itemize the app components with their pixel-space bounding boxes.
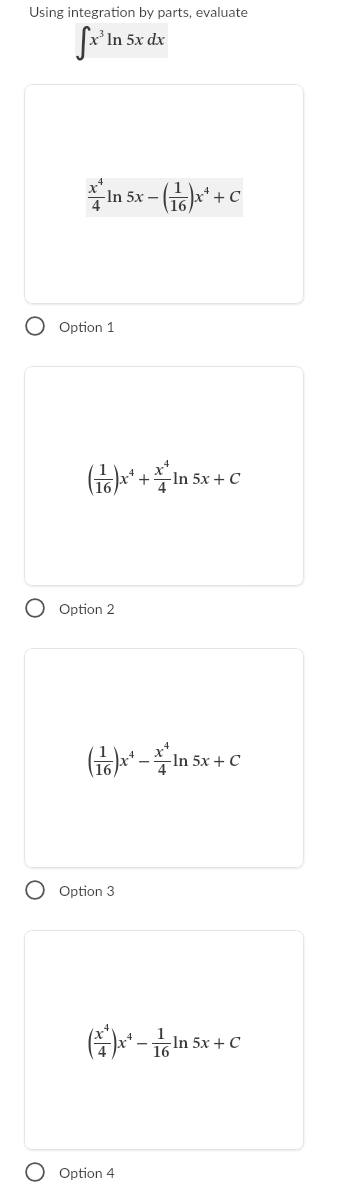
staticText: 1 [99, 744, 108, 761]
staticText: 1 [99, 462, 108, 479]
staticText: 4 [158, 762, 167, 779]
staticText: x [135, 189, 144, 206]
button[interactable]: Option 2 [25, 588, 135, 628]
staticText: 4 [164, 741, 170, 751]
staticText: x [201, 753, 210, 770]
staticText: 4 [158, 480, 167, 497]
staticText: 16 [95, 480, 112, 497]
staticText: − [136, 1035, 149, 1052]
staticText: x [155, 744, 164, 761]
staticText: − [138, 753, 151, 770]
staticText: x [118, 1035, 127, 1052]
button[interactable]: x [24, 84, 304, 304]
staticText: ln 5 [173, 753, 201, 770]
staticText: 4 [129, 750, 135, 760]
staticText: 4 [204, 186, 210, 196]
staticText: 3 [99, 29, 105, 39]
staticText: ∫ [74, 20, 93, 62]
button[interactable]: x [24, 930, 304, 1150]
staticText: x [120, 753, 129, 770]
staticText: 1 [157, 1026, 166, 1043]
staticText: 4 [92, 198, 101, 215]
staticText: C [229, 753, 241, 770]
staticText: Option 2 [59, 600, 115, 617]
button[interactable]: 1 [24, 366, 304, 586]
staticText: x [201, 471, 210, 488]
staticText: + [213, 1035, 226, 1052]
staticText: ln 5 [173, 471, 201, 488]
button[interactable]: Option 1 [25, 306, 135, 346]
staticText: 4 [98, 1044, 107, 1061]
staticText: x [155, 462, 164, 479]
staticText: Using integration by parts, evaluate [29, 3, 248, 20]
staticText: ln 5 [107, 189, 135, 206]
staticText: 4 [129, 468, 135, 478]
staticText: 4 [164, 459, 170, 469]
staticText: dx [147, 32, 165, 49]
staticText: C [229, 471, 241, 488]
staticText: + [213, 753, 226, 770]
staticText: x [95, 1026, 104, 1043]
staticText: ln 5 [173, 1035, 201, 1052]
staticText: 16 [95, 762, 112, 779]
button[interactable]: 1 [24, 648, 304, 868]
staticText: C [229, 189, 241, 206]
staticText: x [89, 180, 98, 197]
staticText: − [147, 189, 160, 206]
staticText: x [195, 189, 204, 206]
staticText: Option 3 [59, 882, 115, 899]
staticText: + [138, 471, 151, 488]
staticText: + [213, 189, 226, 206]
staticText: x [90, 32, 99, 49]
staticText: C [229, 1035, 241, 1052]
staticText: 4 [104, 1023, 110, 1033]
staticText: 1 [174, 180, 183, 197]
staticText: 16 [153, 1044, 170, 1061]
staticText: 4 [98, 177, 104, 187]
staticText: 4 [127, 1032, 133, 1042]
staticText: 16 [170, 198, 187, 215]
staticText: ln 5 [107, 32, 135, 49]
staticText: x [201, 1035, 210, 1052]
button[interactable]: Option 3 [25, 870, 135, 910]
staticText: Option 4 [59, 1164, 115, 1181]
staticText: x [120, 471, 129, 488]
staticText: Option 1 [59, 318, 115, 335]
staticText: + [213, 471, 226, 488]
button[interactable]: Option 4 [25, 1152, 135, 1192]
staticText: x [135, 32, 144, 49]
